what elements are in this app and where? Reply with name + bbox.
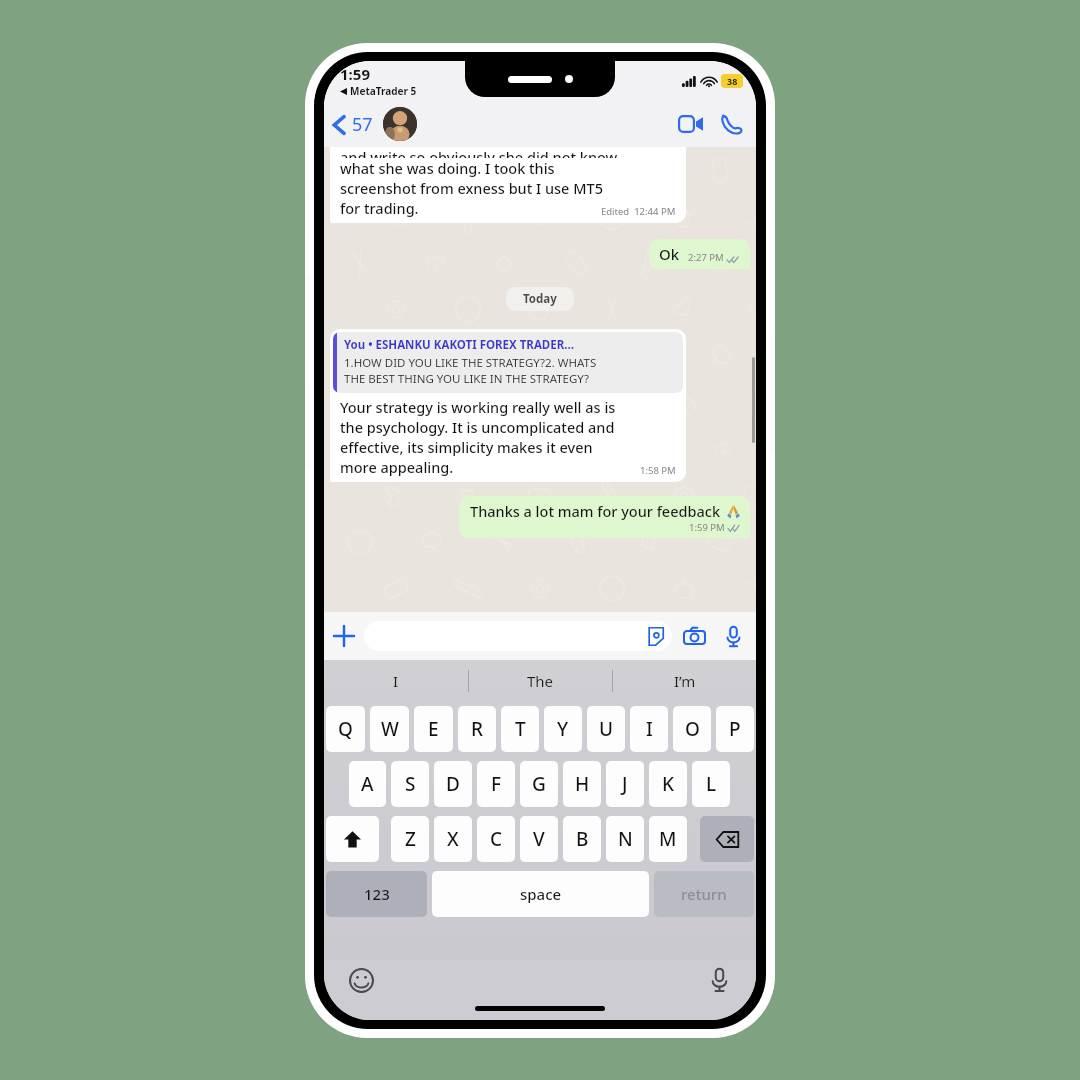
button[interactable]: I — [630, 706, 668, 752]
staticText: F — [491, 771, 502, 797]
button[interactable]: I — [324, 660, 468, 702]
staticText: what she was doing. I took this — [340, 158, 555, 178]
button[interactable]: 123 — [326, 871, 427, 917]
button[interactable]: Ok — [649, 239, 750, 269]
button[interactable]: Y — [544, 706, 582, 752]
button[interactable]: You • ESHANKU KAKOTI FOREX TRADER… — [330, 329, 686, 482]
staticText: H — [575, 771, 590, 797]
button[interactable]: Thanks a lot mam for your feedback — [459, 496, 750, 538]
staticText: screenshot from exness but I use MT5 — [340, 178, 603, 198]
staticText: 2:27 PM — [688, 251, 724, 264]
staticText: X — [447, 826, 459, 852]
staticText: L — [706, 771, 717, 797]
button[interactable]: Stickers — [364, 621, 672, 651]
button[interactable]: U — [587, 706, 625, 752]
button[interactable]: I’m — [613, 660, 756, 702]
button[interactable]: V — [520, 816, 558, 862]
staticText: MetaTrader 5 — [350, 84, 417, 98]
button[interactable]: Shift — [326, 816, 379, 862]
staticText: effective, its simplicity makes it even — [340, 437, 593, 457]
staticText: 123 — [364, 884, 390, 904]
button[interactable]: W — [370, 706, 409, 752]
staticText: 1:58 PM — [640, 464, 676, 477]
button[interactable]: The — [469, 660, 612, 702]
button[interactable]: B — [563, 816, 601, 862]
staticText: You • ESHANKU KAKOTI FOREX TRADER… — [344, 337, 575, 353]
button[interactable]: L — [692, 761, 730, 807]
staticText: I’m — [674, 671, 696, 691]
staticText: return — [681, 884, 727, 904]
button[interactable]: R — [458, 706, 496, 752]
staticText: D — [446, 771, 460, 797]
button[interactable]: Backspace — [700, 816, 754, 862]
button[interactable]: J — [606, 761, 644, 807]
button[interactable]: D — [434, 761, 472, 807]
staticText: 1:59 PM — [689, 521, 725, 534]
staticText: Thanks a lot mam for your feedback — [470, 501, 721, 521]
staticText: Q — [338, 716, 353, 742]
button[interactable]: Contact profile — [383, 107, 417, 141]
button[interactable]: H — [563, 761, 601, 807]
button[interactable]: 57 — [324, 108, 377, 141]
staticText: M — [659, 826, 677, 852]
staticText: space — [520, 884, 562, 904]
staticText: 38 — [727, 75, 738, 87]
staticText: I — [646, 716, 653, 742]
button[interactable]: Dictation — [704, 965, 734, 995]
staticText: P — [729, 716, 741, 742]
staticText: K — [662, 771, 675, 797]
button[interactable]: G — [520, 761, 558, 807]
staticText: E — [428, 716, 439, 742]
staticText: T — [515, 716, 526, 742]
button[interactable]: Attach — [324, 616, 364, 656]
button[interactable]: Voice message — [716, 616, 750, 656]
other: Stickers — [645, 627, 664, 646]
button[interactable]: return — [654, 871, 754, 917]
staticText: the psychology. It is uncomplicated and — [340, 417, 615, 437]
staticText: I — [393, 671, 399, 691]
staticText: U — [599, 716, 614, 742]
button[interactable]: Video call — [668, 102, 712, 146]
staticText: N — [618, 826, 633, 852]
button[interactable]: A — [349, 761, 386, 807]
button[interactable]: Voice call — [712, 102, 750, 146]
staticText: Your strategy is working really well as … — [340, 397, 616, 417]
staticText: O — [685, 716, 700, 742]
button[interactable]: Emoji keyboard — [346, 965, 376, 995]
button[interactable]: Z — [391, 816, 429, 862]
staticText: THE BEST THING YOU LIKE IN THE STRATEGY? — [344, 371, 590, 387]
button[interactable]: X — [434, 816, 472, 862]
staticText: A — [361, 771, 374, 797]
staticText: and write so obviously she did not know — [340, 147, 618, 158]
button[interactable]: P — [716, 706, 754, 752]
button[interactable]: Q — [326, 706, 365, 752]
button[interactable]: C — [477, 816, 515, 862]
staticText: Edited 12:44 PM — [601, 205, 676, 218]
staticText: C — [490, 826, 503, 852]
staticText: Today — [523, 291, 557, 307]
staticText: S — [405, 771, 416, 797]
staticText: The — [527, 671, 554, 691]
button[interactable]: M — [649, 816, 687, 862]
button[interactable]: O — [673, 706, 711, 752]
button[interactable]: T — [501, 706, 539, 752]
button[interactable]: space — [432, 871, 649, 917]
button[interactable]: E — [414, 706, 453, 752]
staticText: J — [622, 771, 628, 797]
staticText: R — [471, 716, 484, 742]
staticText: Ok — [659, 244, 680, 264]
staticText: 1.HOW DID YOU LIKE THE STRATEGY?2. WHATS — [344, 355, 597, 371]
staticText: W — [381, 716, 399, 742]
staticText: B — [576, 826, 589, 852]
staticText: Y — [557, 716, 569, 742]
button[interactable]: K — [649, 761, 687, 807]
button[interactable]: Camera — [672, 614, 716, 658]
button[interactable]: S — [391, 761, 429, 807]
button[interactable]: and write so obviously she did not know — [330, 147, 686, 223]
staticText: G — [532, 771, 546, 797]
staticText: 1:59 — [340, 64, 370, 84]
staticText: V — [533, 826, 545, 852]
button[interactable]: N — [606, 816, 644, 862]
button[interactable]: F — [477, 761, 515, 807]
staticText: 57 — [352, 112, 373, 137]
